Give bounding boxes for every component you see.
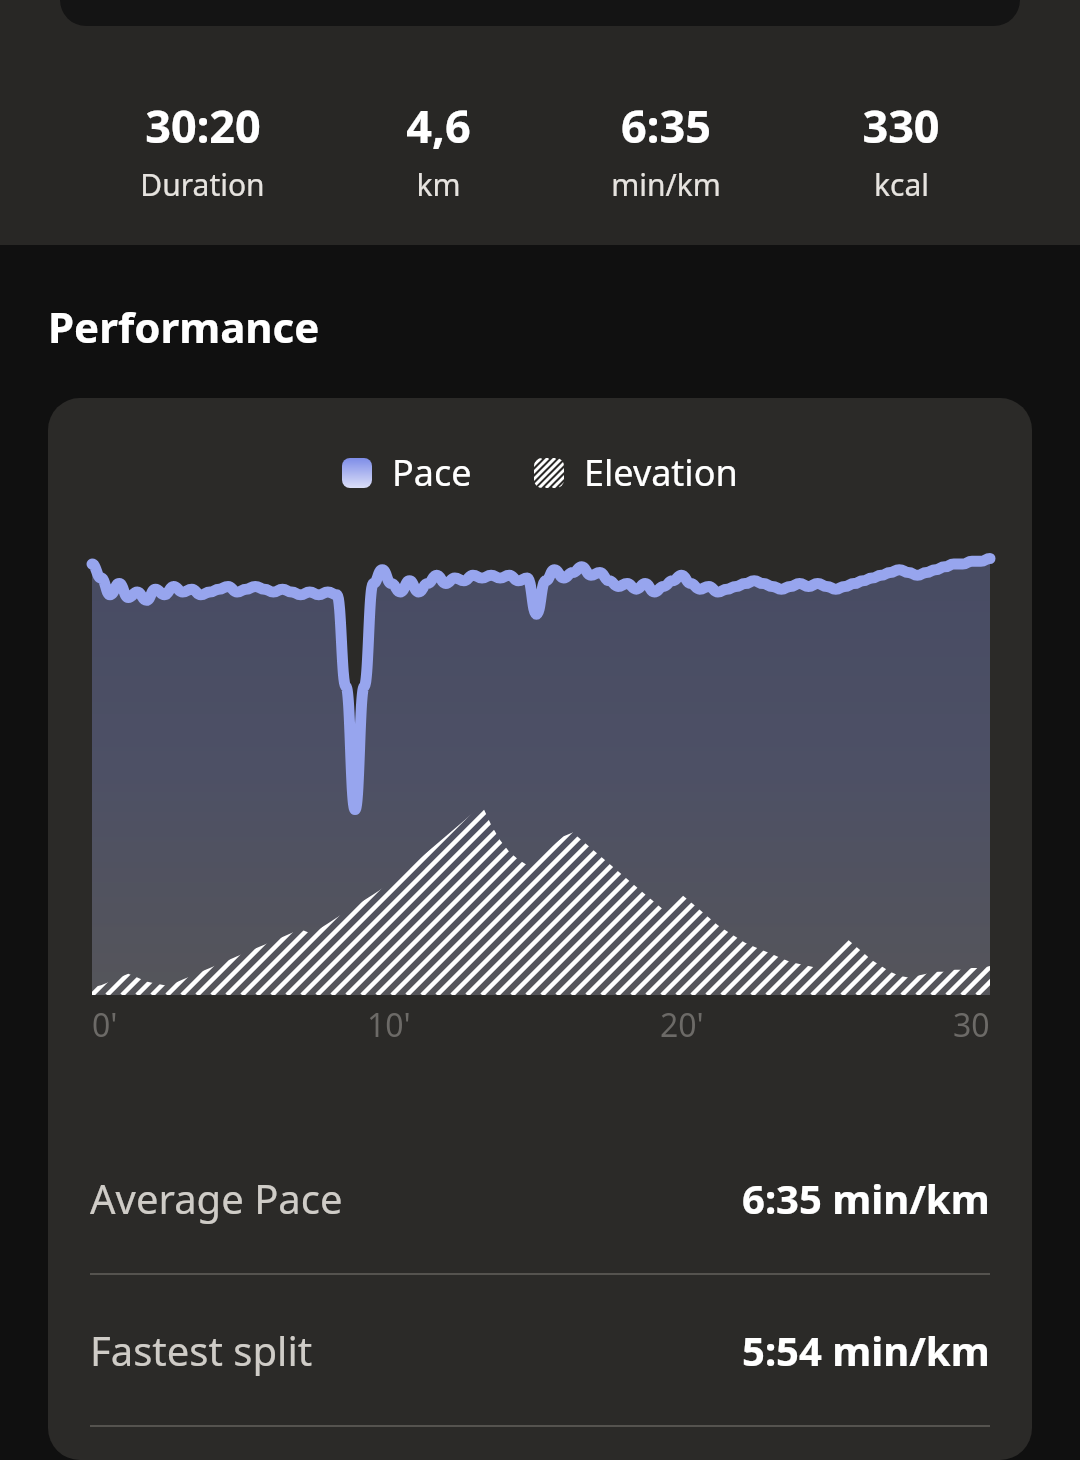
staticText: kcal (874, 164, 929, 205)
staticText: 6:35 min/km (742, 1171, 990, 1225)
button[interactable]: 30:20 (140, 95, 265, 205)
staticText: Performance (48, 298, 320, 355)
button[interactable]: 4,6 (406, 95, 471, 205)
staticText: 6:35 (621, 95, 711, 156)
staticText: min/km (611, 164, 721, 205)
staticText: 10' (367, 1003, 411, 1047)
staticText: 5:54 min/km (742, 1323, 990, 1377)
staticText: 330 (862, 95, 940, 156)
button[interactable]: 330 (862, 95, 940, 205)
staticText: Elevation (584, 448, 738, 497)
staticText: Pace (392, 448, 472, 497)
staticText: Fastest split (90, 1323, 313, 1377)
staticText: 4,6 (406, 95, 471, 156)
staticText: 30 (953, 1003, 990, 1047)
button[interactable]: Pace (48, 398, 1032, 1460)
button[interactable]: Average Pace (48, 1123, 1032, 1273)
staticText: 0' (92, 1003, 118, 1047)
staticText: Duration (140, 164, 265, 205)
staticText: km (416, 164, 461, 205)
staticText: 30:20 (145, 95, 261, 156)
button[interactable]: 6:35 (611, 95, 721, 205)
staticText: Average Pace (90, 1171, 343, 1225)
button[interactable]: Fastest split (48, 1275, 1032, 1425)
staticText: 20' (660, 1003, 704, 1047)
